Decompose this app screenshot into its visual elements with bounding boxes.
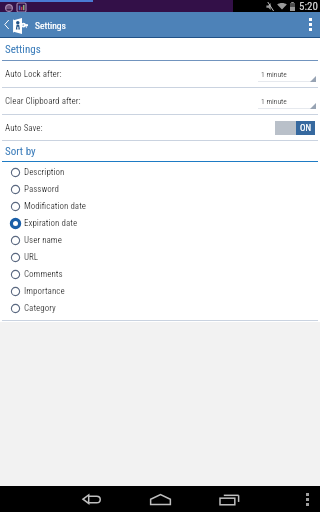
button[interactable]: Home bbox=[140, 486, 180, 512]
staticText: User name bbox=[24, 235, 62, 246]
button[interactable]: Modification date bbox=[0, 198, 320, 215]
staticText: Sort by bbox=[5, 145, 36, 158]
staticText: 1 minute bbox=[261, 97, 287, 106]
button[interactable]: Recent apps bbox=[209, 486, 249, 512]
staticText: Password bbox=[24, 184, 59, 195]
button[interactable]: URL bbox=[0, 249, 320, 266]
staticText: Clear Clipboard after: bbox=[5, 96, 81, 107]
staticText: ON bbox=[300, 123, 311, 134]
staticText: 5:20 bbox=[299, 0, 318, 12]
staticText: Auto Save: bbox=[5, 123, 43, 134]
button[interactable]: Auto Lock after: bbox=[0, 61, 320, 87]
button[interactable]: Navigate up bbox=[0, 12, 33, 37]
staticText: Importance bbox=[24, 286, 65, 297]
button[interactable]: Menu bbox=[296, 486, 318, 512]
staticText: URL bbox=[24, 252, 39, 263]
staticText: Modification date bbox=[24, 201, 87, 212]
button[interactable]: Expiration date bbox=[0, 215, 320, 232]
button[interactable]: Clear Clipboard after: bbox=[0, 88, 320, 114]
staticText: Category bbox=[24, 303, 56, 314]
button[interactable]: Back bbox=[72, 486, 112, 512]
button[interactable]: Auto Save: bbox=[0, 115, 320, 141]
button[interactable]: Importance bbox=[0, 283, 320, 300]
staticText: Settings bbox=[35, 20, 66, 31]
staticText: Description bbox=[24, 167, 65, 178]
button[interactable]: Comments bbox=[0, 266, 320, 283]
button[interactable]: User name bbox=[0, 232, 320, 249]
staticText: Comments bbox=[24, 269, 63, 280]
staticText: Expiration date bbox=[24, 218, 78, 229]
button[interactable]: Password bbox=[0, 181, 320, 198]
button[interactable]: Category bbox=[0, 300, 320, 317]
button[interactable]: Description bbox=[0, 164, 320, 181]
button[interactable]: More options bbox=[300, 12, 320, 37]
staticText: 1 minute bbox=[261, 70, 287, 79]
staticText: Settings bbox=[5, 43, 41, 56]
staticText: Auto Lock after: bbox=[5, 69, 62, 80]
